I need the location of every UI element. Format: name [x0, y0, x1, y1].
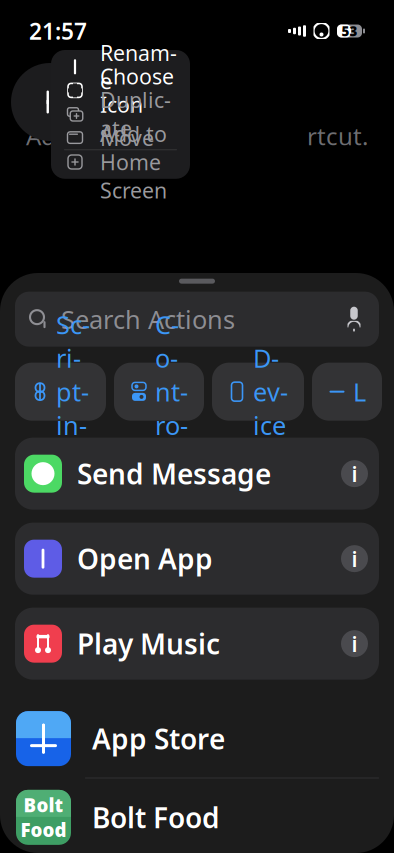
staticText: Scripting	[56, 307, 90, 476]
staticText: Open App	[77, 540, 213, 577]
button[interactable]: Open App	[0, 523, 394, 595]
staticText: i	[351, 459, 357, 488]
button[interactable]: Device	[212, 363, 304, 421]
button[interactable]: Scripting	[15, 363, 106, 421]
button[interactable]: Send Message	[0, 438, 394, 510]
button[interactable]: L	[312, 363, 382, 421]
staticText: L	[353, 375, 366, 408]
staticText: 21:57	[29, 16, 87, 46]
staticText: Play Music	[77, 625, 220, 662]
button[interactable]: App Store	[0, 700, 394, 778]
staticText: Move	[100, 123, 154, 152]
staticText: Add to Home Screen	[100, 119, 167, 204]
staticText: Device	[253, 341, 288, 442]
staticText: Choose Icon	[100, 62, 174, 119]
staticText: rtcut.	[307, 120, 368, 152]
staticText: i	[351, 544, 357, 573]
staticText: Controls	[155, 307, 188, 476]
staticText: Food	[20, 817, 66, 842]
button[interactable]: Choose Icon	[51, 79, 190, 102]
staticText: 53	[341, 22, 357, 40]
button[interactable]: Back	[11, 63, 89, 141]
button[interactable]: Rename	[51, 55, 190, 79]
staticText: App Store	[92, 720, 225, 757]
staticText: Bolt Food	[92, 799, 220, 836]
button[interactable]: Add to Home Screen	[51, 150, 190, 174]
button[interactable]: Play Music	[0, 608, 394, 680]
staticText: Bolt	[23, 793, 63, 817]
button[interactable]: Bolt	[0, 778, 394, 853]
staticText: Add a	[26, 120, 90, 152]
staticText: i	[351, 629, 357, 658]
button[interactable]: Search Actions	[15, 292, 379, 347]
button[interactable]: Controls	[114, 363, 204, 421]
staticText: Send Message	[77, 455, 271, 492]
staticText: Search Actions	[61, 302, 235, 336]
button[interactable]: Move	[51, 126, 190, 149]
button[interactable]: Duplicate	[51, 102, 190, 126]
staticText: Rename	[100, 38, 177, 95]
staticText: Duplicate	[100, 86, 171, 142]
